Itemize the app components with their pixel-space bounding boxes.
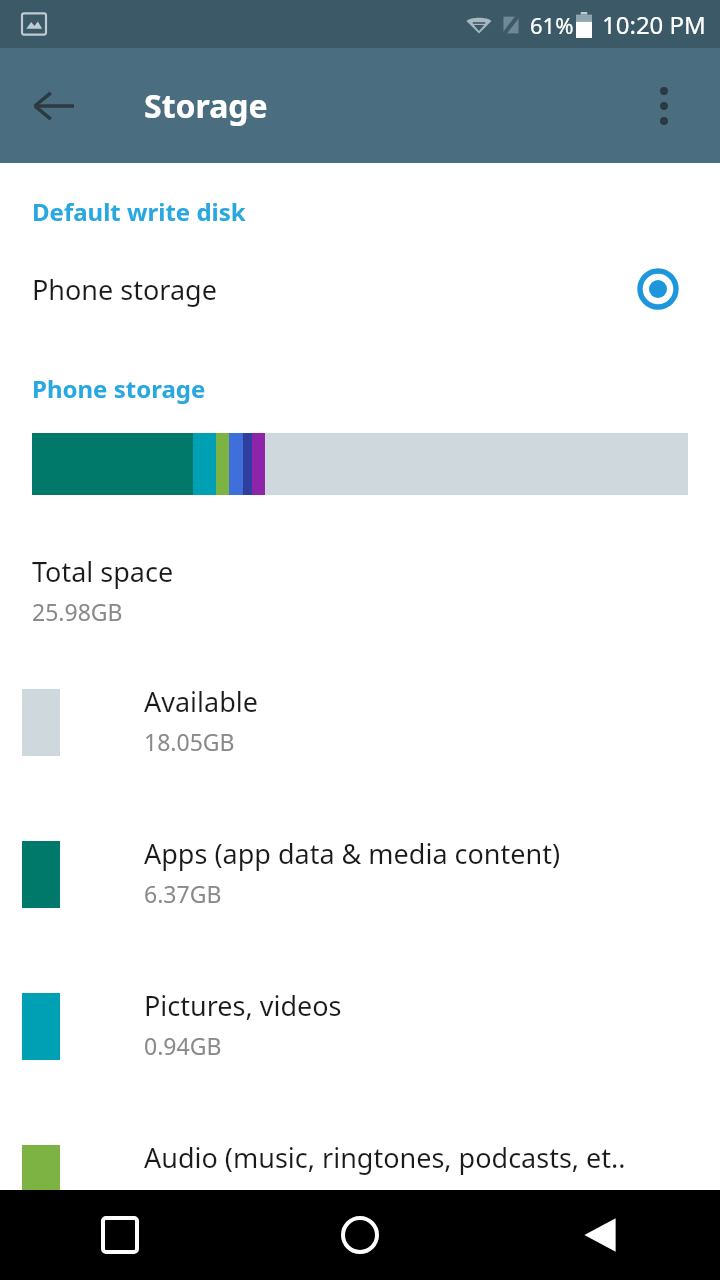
button[interactable]: Audio (music, ringtones, podcasts, et..	[0, 1139, 720, 1190]
button[interactable]: Apps (app data & media content)	[0, 835, 720, 909]
staticText: 18.05GB	[144, 726, 235, 757]
staticText: Available	[144, 683, 258, 720]
staticText: Audio (music, ringtones, podcasts, et..	[144, 1139, 626, 1176]
staticText: Pictures, videos	[144, 987, 342, 1024]
staticText: 25.98GB	[32, 596, 123, 627]
button[interactable]: Home	[240, 1190, 480, 1280]
staticText: 0.94GB	[144, 1030, 222, 1061]
staticText: Default write disk	[32, 195, 246, 228]
staticText: 10:20 PM	[602, 8, 706, 41]
button[interactable]: Available	[0, 683, 720, 757]
button[interactable]: More options	[636, 78, 692, 134]
button[interactable]: Phone storage	[0, 256, 720, 322]
staticText: Storage	[144, 84, 268, 128]
staticText: 61%	[530, 10, 574, 40]
button[interactable]: Recent apps	[0, 1190, 240, 1280]
button[interactable]: Back	[480, 1190, 720, 1280]
staticText: Phone storage	[32, 271, 638, 308]
staticText: Apps (app data & media content)	[144, 835, 561, 872]
button[interactable]: Pictures, videos	[0, 987, 720, 1061]
staticText: 6.37GB	[144, 878, 222, 909]
button[interactable]: Back	[18, 70, 90, 142]
staticText: Total space	[32, 553, 174, 590]
staticText: Phone storage	[32, 372, 206, 405]
